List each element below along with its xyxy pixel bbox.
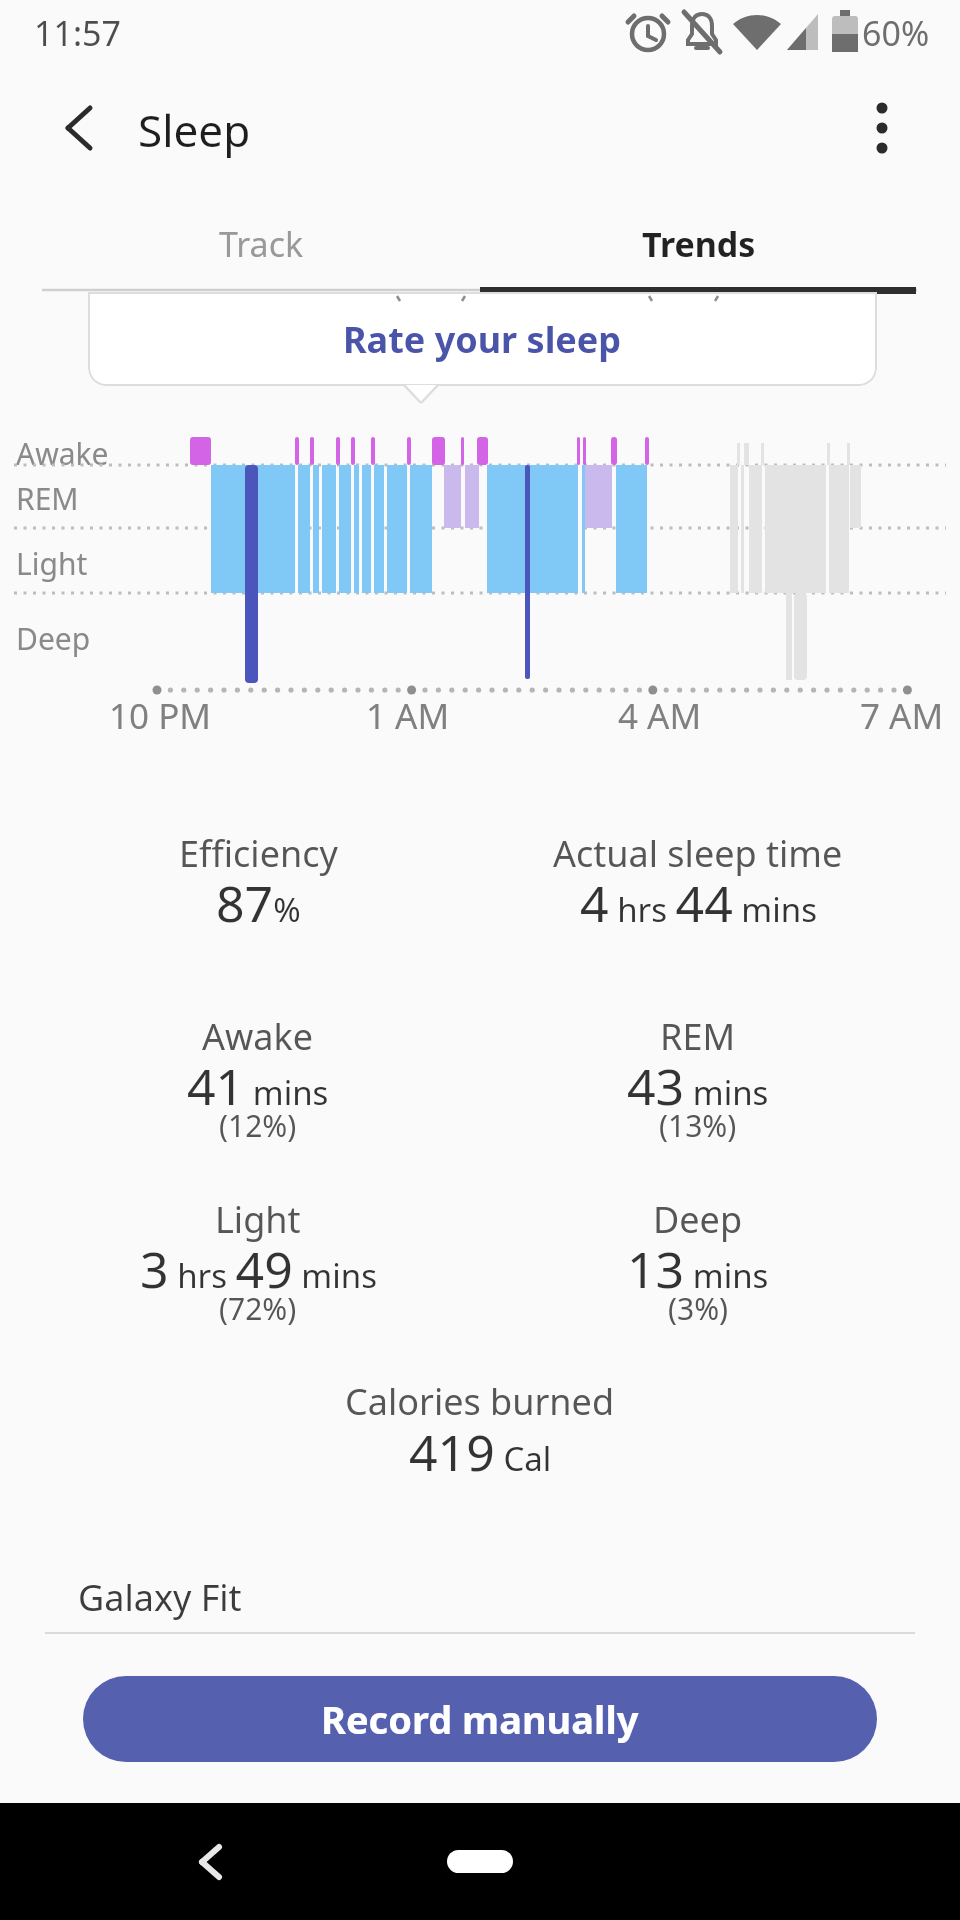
staticText: 4 AM: [618, 692, 702, 740]
staticText: (12%): [219, 1105, 297, 1146]
staticText: Record manually: [321, 1693, 639, 1745]
button[interactable]: Trends: [480, 200, 917, 288]
staticText: 11:57: [34, 10, 121, 56]
staticText: Sleep: [138, 100, 251, 160]
staticText: 43 mins: [627, 1052, 769, 1120]
staticText: Deep: [653, 1195, 743, 1244]
staticText: Rate your sleep: [343, 315, 622, 364]
button[interactable]: Record manually: [83, 1676, 877, 1762]
staticText: 3 hrs 49 mins: [140, 1235, 377, 1303]
staticText: Awake: [16, 433, 109, 474]
staticText: 41 mins: [187, 1052, 329, 1120]
staticText: REM: [16, 478, 79, 519]
button[interactable]: [440, 1823, 520, 1903]
staticText: (3%): [668, 1288, 729, 1329]
staticText: Light: [16, 543, 88, 584]
staticText: REM: [660, 1012, 736, 1061]
staticText: 419 Cal: [409, 1418, 552, 1486]
staticText: Track: [219, 221, 304, 267]
button[interactable]: [850, 90, 920, 166]
staticText: Galaxy Fit: [78, 1573, 242, 1622]
staticText: 7 AM: [860, 692, 944, 740]
button[interactable]: [40, 90, 116, 166]
staticText: Light: [215, 1195, 301, 1244]
staticText: Awake: [202, 1012, 314, 1061]
staticText: Deep: [16, 618, 91, 659]
staticText: 1 AM: [366, 692, 450, 740]
staticText: 60%: [862, 10, 930, 56]
staticText: 87%: [216, 869, 301, 937]
button[interactable]: Rate your sleep: [88, 292, 877, 386]
staticText: 10 PM: [109, 692, 212, 740]
staticText: 13 mins: [627, 1235, 769, 1303]
staticText: Trends: [642, 221, 756, 267]
button[interactable]: [170, 1823, 250, 1903]
staticText: (13%): [659, 1105, 737, 1146]
staticText: Calories burned: [345, 1377, 615, 1426]
staticText: (72%): [219, 1288, 297, 1329]
button[interactable]: Track: [42, 200, 480, 288]
staticText: Efficiency: [179, 829, 338, 878]
staticText: 4 hrs 44 mins: [580, 869, 817, 937]
staticText: Actual sleep time: [553, 829, 843, 878]
